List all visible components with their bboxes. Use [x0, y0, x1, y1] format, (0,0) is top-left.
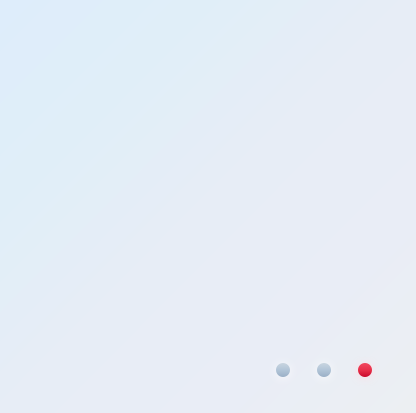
button[interactable]: Page 2	[317, 363, 331, 377]
button[interactable]: Page 1	[276, 363, 290, 377]
button[interactable]: Page 3, current page	[358, 363, 372, 377]
